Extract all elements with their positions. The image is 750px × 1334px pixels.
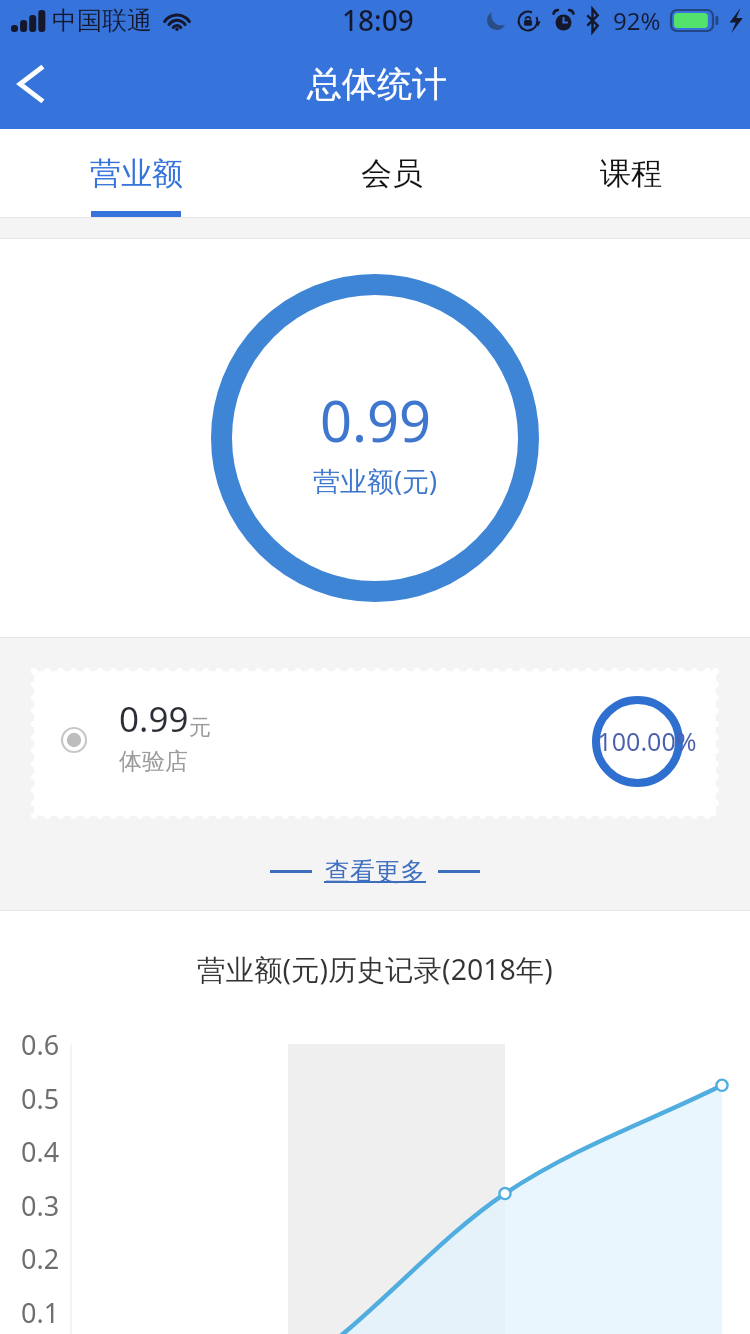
staticText: 营业额(元)历史记录(2018年) xyxy=(197,950,553,989)
staticText: 课程 xyxy=(600,154,662,193)
button[interactable]: 查看更多 xyxy=(270,856,480,889)
staticText: 18:09 xyxy=(342,1,414,39)
staticText: 元 xyxy=(189,714,211,742)
staticText: 0.99 xyxy=(119,695,189,743)
button[interactable]: 营业额 xyxy=(0,129,272,217)
button[interactable]: 课程 xyxy=(511,129,750,217)
staticText: 中国联通 xyxy=(52,5,152,36)
staticText: 查看更多 xyxy=(325,856,425,887)
staticText: 100.00% xyxy=(577,724,717,758)
staticText: 会员 xyxy=(361,154,423,193)
button[interactable]: Back xyxy=(0,40,60,129)
staticText: 营业额 xyxy=(90,154,183,193)
staticText: 92% xyxy=(613,4,661,37)
staticText: 体验店 xyxy=(119,747,188,776)
staticText: 0.2 xyxy=(21,1240,60,1277)
staticText: 0.5 xyxy=(21,1080,60,1117)
staticText: 0.3 xyxy=(21,1187,60,1224)
staticText: 营业额(元) xyxy=(313,462,438,499)
staticText: 0.1 xyxy=(21,1294,60,1331)
button[interactable]: 会员 xyxy=(272,129,511,217)
staticText: 0.6 xyxy=(21,1026,60,1063)
staticText: 0.4 xyxy=(21,1133,60,1170)
staticText: 0.99 xyxy=(320,382,432,458)
button[interactable]: 0.99 xyxy=(31,668,719,819)
staticText: 总体统计 xyxy=(307,62,447,106)
